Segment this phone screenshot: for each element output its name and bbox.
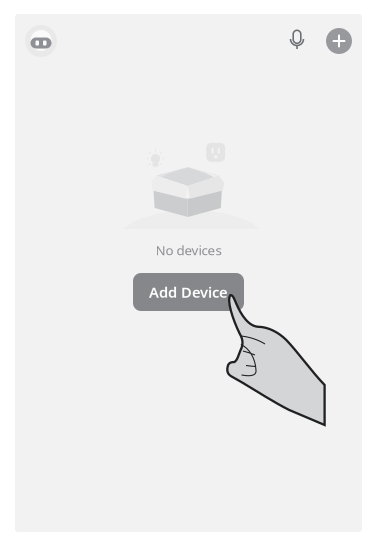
staticText: No devices [155, 241, 221, 259]
staticText: Add Device [149, 282, 228, 302]
button[interactable]: Add Device [133, 273, 244, 311]
button[interactable]: Profile [25, 25, 57, 57]
button[interactable]: Voice control [284, 28, 310, 54]
button[interactable]: Add device [326, 28, 352, 54]
